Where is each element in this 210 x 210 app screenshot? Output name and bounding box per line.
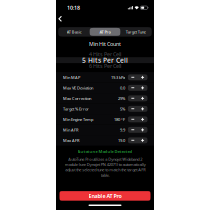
staticText: AT Basic xyxy=(67,29,82,34)
button[interactable]: Enable AT Pro xyxy=(59,191,150,201)
staticText: 29% xyxy=(118,96,125,101)
staticText: 180 °F xyxy=(114,117,125,122)
button[interactable]: Decrease xyxy=(128,95,138,101)
staticText: Min Hit Count xyxy=(89,40,121,48)
staticText: 19.0 xyxy=(118,138,125,143)
button[interactable]: Decrease xyxy=(128,116,138,122)
button[interactable]: AT Pro xyxy=(90,28,120,36)
button[interactable]: Increase xyxy=(138,95,147,101)
button[interactable]: Back xyxy=(56,14,67,23)
staticText: 19.3 kPa xyxy=(111,75,125,80)
button[interactable]: Decrease xyxy=(128,85,138,91)
button[interactable]: Increase xyxy=(138,74,147,80)
button[interactable]: Increase xyxy=(138,127,147,133)
button[interactable]: Increase xyxy=(138,137,147,143)
staticText: AT Pro xyxy=(99,29,110,34)
button[interactable]: Increase xyxy=(138,85,147,91)
staticText: Max VE Deviation xyxy=(63,85,93,90)
staticText: Autotune Module Detected xyxy=(77,149,132,154)
staticText: 6 Hits Per Cell xyxy=(89,62,121,70)
staticText: Target Tune xyxy=(126,29,146,34)
button[interactable]: Target Tune xyxy=(120,28,151,36)
staticText: Enable AT Pro xyxy=(88,192,121,199)
button[interactable]: Decrease xyxy=(128,127,138,133)
staticText: 9.9 xyxy=(120,127,125,132)
button[interactable]: AT Basic xyxy=(59,28,90,36)
button[interactable]: Increase xyxy=(138,106,147,112)
staticText: Min Engine Temp xyxy=(63,117,93,122)
button[interactable]: Decrease xyxy=(128,74,138,80)
button[interactable]: Decrease xyxy=(128,106,138,112)
staticText: 5 Hits Per Cell xyxy=(82,56,128,65)
staticText: Min AFR xyxy=(63,127,78,132)
staticText: AutoTune Pro utilizes a Dynojet Wideband… xyxy=(64,156,145,178)
staticText: Min MAP xyxy=(63,75,80,80)
button[interactable]: Decrease xyxy=(128,137,138,143)
staticText: 5% xyxy=(120,106,125,111)
staticText: 4 Hits Per Cell xyxy=(89,51,121,58)
staticText: Target % Error xyxy=(63,106,89,111)
button[interactable]: Increase xyxy=(138,116,147,122)
staticText: 0.0 xyxy=(120,85,125,90)
staticText: Max AFR xyxy=(63,138,79,143)
staticText: 10:18 xyxy=(67,4,80,11)
staticText: Max Correction xyxy=(63,96,91,101)
